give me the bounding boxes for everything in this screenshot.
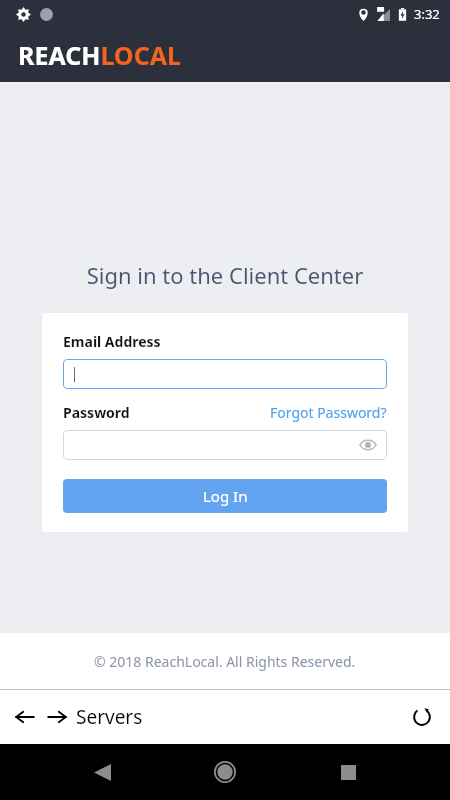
button[interactable]: Back: [12, 704, 38, 730]
staticText: Forgot Password?: [270, 403, 387, 422]
button[interactable]: Forgot Password?: [270, 403, 387, 422]
staticText: © 2018 ReachLocal. All Rights Reserved.: [94, 652, 356, 671]
staticText: Sign in to the Client Center: [0, 260, 450, 290]
staticText: Log In: [203, 486, 248, 506]
button[interactable]: Log In: [63, 479, 387, 513]
staticText: Servers: [76, 704, 143, 730]
button[interactable]: Back: [88, 758, 116, 786]
button[interactable]: Show password: [63, 430, 387, 460]
staticText: Password: [63, 403, 130, 422]
staticText: Email Address: [63, 332, 161, 351]
button[interactable]: [63, 359, 387, 389]
button[interactable]: Servers: [76, 704, 143, 730]
button[interactable]: Forward: [44, 704, 70, 730]
button[interactable]: Recents: [334, 758, 362, 786]
button[interactable]: Refresh: [406, 701, 438, 733]
staticText: REACHLOCAL: [18, 38, 181, 72]
button[interactable]: Home: [209, 756, 241, 788]
staticText: 3:32: [414, 5, 440, 23]
button[interactable]: Show password: [359, 436, 377, 454]
